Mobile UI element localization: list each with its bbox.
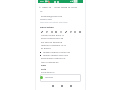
staticText: Sent from my phone app today	[40, 21, 68, 24]
button[interactable]: Format option	[73, 30, 76, 33]
other: Account avatar	[40, 76, 43, 79]
button[interactable]: Navigation button	[69, 84, 73, 88]
staticText: To	[40, 10, 43, 13]
button[interactable]: Format option	[69, 30, 72, 33]
button[interactable]: Format option	[40, 30, 43, 33]
staticText: elit sed do eiusmod	[41, 41, 63, 44]
staticText: et dolore	[41, 47, 51, 50]
button[interactable]	[40, 74, 81, 82]
staticText: reprehen	[45, 76, 54, 79]
button[interactable]: Format option	[45, 30, 48, 33]
staticText: Lorem ipsum dolor si	[41, 34, 64, 37]
button[interactable]: Format option	[78, 30, 81, 33]
staticText: minim veniam quis nos	[43, 54, 69, 57]
staticText: tempor incididunt ut la	[41, 44, 66, 47]
staticText: Description	[40, 25, 54, 28]
button[interactable]: ← Reply to · Draft saved to cloud	[39, 5, 78, 8]
button[interactable]: Format option	[59, 30, 62, 33]
staticText: ← Reply to · Draft saved to cloud	[39, 5, 78, 8]
staticText: nisi ut aliquip ex	[41, 61, 59, 64]
staticText: magna aliqua ut enim ad	[43, 51, 70, 54]
button[interactable]: Format option	[54, 30, 57, 33]
button[interactable]: Navigation button	[51, 84, 55, 88]
staticText: exercitation ullamco la	[41, 57, 66, 60]
staticText: amet consectetur ad	[41, 37, 64, 40]
button[interactable]: Navigation button	[60, 84, 64, 88]
staticText: Subject goes	[40, 18, 52, 21]
staticText: 9:41 ● ▪	[40, 0, 49, 3]
button[interactable]: Format option	[64, 30, 67, 33]
staticText: Duis	[41, 64, 47, 67]
staticText: aute	[41, 68, 46, 71]
button[interactable]: Format option	[50, 30, 53, 33]
staticText: example@mail.com	[41, 15, 63, 18]
staticText: ▴ ▪ ██	[70, 0, 78, 3]
staticText: irure dolor in	[41, 71, 55, 74]
